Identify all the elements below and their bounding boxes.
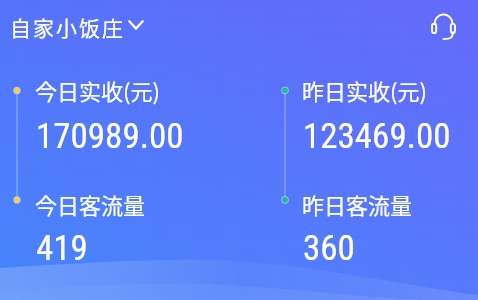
staticText: 昨日客流量: [302, 188, 413, 220]
staticText: 自家小饭庄: [10, 12, 125, 42]
button[interactable]: Customer service: [430, 13, 457, 40]
button[interactable]: 自家小饭庄: [10, 12, 144, 42]
staticText: 360: [303, 228, 355, 269]
staticText: 419: [36, 228, 88, 269]
staticText: 今日实收(元): [35, 74, 160, 106]
staticText: 123469.00: [303, 116, 451, 157]
staticText: 昨日实收(元): [302, 74, 427, 106]
staticText: 170989.00: [36, 116, 184, 157]
staticText: 今日客流量: [35, 188, 146, 220]
